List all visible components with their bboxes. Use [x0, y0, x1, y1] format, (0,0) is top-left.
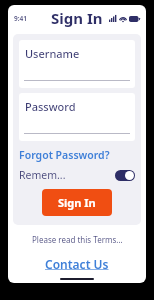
button[interactable]: Sign In: [42, 189, 112, 216]
staticText: 9:41: [14, 14, 27, 23]
staticText: Password: [25, 99, 76, 114]
button[interactable]: Forgot Password?: [19, 147, 110, 163]
button[interactable]: Remember me toggle: [115, 170, 135, 181]
staticText: Remem...: [19, 168, 66, 182]
staticText: Please read this Terms...: [32, 234, 123, 245]
button[interactable]: Contact Us: [41, 255, 113, 273]
staticText: Sign In: [51, 8, 103, 28]
button[interactable]: Username: [19, 40, 135, 88]
staticText: Username: [25, 46, 80, 61]
button[interactable]: Password: [19, 93, 135, 141]
staticText: Contact Us: [45, 256, 109, 272]
staticText: Forgot Password?: [19, 148, 110, 162]
staticText: Sign In: [58, 195, 96, 210]
button[interactable]: Remem...: [19, 168, 135, 182]
